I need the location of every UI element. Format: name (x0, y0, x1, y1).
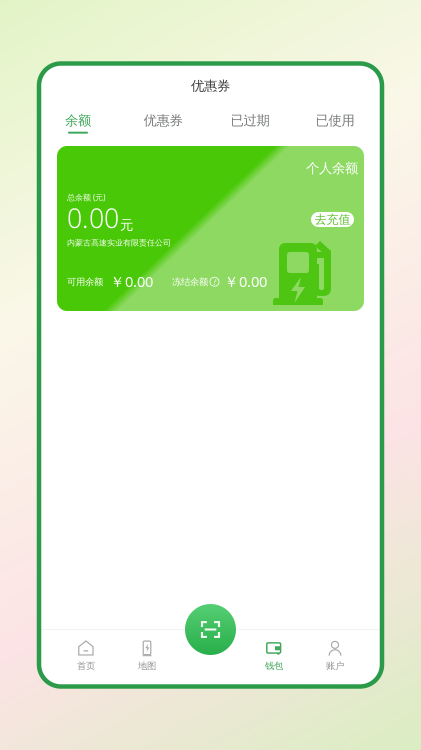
staticText: ￥0.00 (224, 271, 267, 291)
button[interactable]: 钱包 (242, 636, 306, 676)
button[interactable]: 地图 (115, 636, 179, 676)
staticText: 可用余额 (67, 276, 103, 287)
staticText: 已过期 (230, 112, 269, 129)
staticText: 已使用 (315, 112, 354, 129)
staticText: 账户 (326, 660, 344, 672)
staticText: 总余额 (元) (67, 192, 105, 203)
button[interactable]: Scan QR code (185, 604, 236, 655)
button[interactable]: 余额 (35, 108, 120, 138)
staticText: ? (213, 276, 216, 287)
staticText: 内蒙古高速实业有限责任公司 (67, 238, 171, 248)
staticText: 优惠券 (143, 112, 182, 129)
button[interactable]: 优惠券 (120, 108, 205, 138)
staticText: 去充值 (314, 212, 350, 227)
button[interactable]: 已过期 (207, 108, 292, 138)
button[interactable]: 已使用 (292, 108, 377, 138)
button[interactable]: 去充值 (311, 212, 354, 227)
button[interactable]: 账户 (303, 636, 367, 676)
staticText: 首页 (77, 660, 95, 672)
staticText: 冻结余额 (172, 276, 208, 287)
staticText: 优惠券 (191, 78, 230, 94)
staticText: ￥0.00 (110, 271, 153, 291)
staticText: 个人余额 (306, 160, 358, 176)
staticText: 0.00 (67, 200, 119, 236)
staticText: 余额 (65, 112, 91, 129)
staticText: 地图 (138, 660, 156, 672)
staticText: 元 (120, 217, 133, 233)
staticText: 钱包 (265, 660, 283, 672)
button[interactable]: 首页 (54, 636, 118, 676)
